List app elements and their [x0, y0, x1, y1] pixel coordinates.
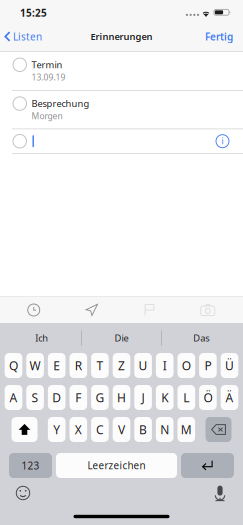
button[interactable]: Foto: [179, 297, 237, 323]
staticText: A: [9, 389, 17, 406]
button[interactable]: Ä: [221, 385, 238, 410]
button[interactable]: X: [69, 417, 87, 442]
staticText: Y: [53, 421, 60, 438]
button[interactable]: J: [134, 385, 152, 410]
staticText: 123: [21, 459, 39, 472]
button[interactable]: Ich: [2, 323, 81, 353]
button[interactable]: G: [91, 385, 109, 410]
staticText: Morgen: [31, 110, 62, 122]
button[interactable]: N: [156, 417, 173, 442]
staticText: Ö: [203, 389, 212, 406]
staticText: N: [160, 421, 169, 438]
staticText: X: [75, 421, 82, 438]
button[interactable]: Leerzeichen: [56, 453, 177, 478]
button[interactable]: I: [156, 353, 173, 378]
staticText: D: [52, 389, 61, 406]
staticText: Ä: [225, 389, 233, 406]
staticText: V: [118, 421, 125, 438]
staticText: Fertig: [205, 30, 233, 43]
staticText: Die: [114, 332, 128, 344]
button[interactable]: Diktieren: [200, 478, 240, 508]
staticText: Besprechung: [31, 97, 89, 110]
staticText: M: [181, 421, 192, 438]
staticText: S: [32, 389, 39, 406]
staticText: i: [221, 135, 223, 147]
button[interactable]: Löschen: [205, 417, 231, 442]
staticText: C: [96, 421, 104, 438]
button[interactable]: S: [26, 385, 44, 410]
staticText: I: [163, 357, 167, 374]
staticText: F: [75, 389, 81, 406]
button[interactable]: A: [5, 385, 22, 410]
staticText: Termin: [31, 58, 62, 71]
staticText: R: [75, 357, 82, 374]
button[interactable]: P: [199, 353, 217, 378]
button[interactable]: K: [156, 385, 173, 410]
button[interactable]: Fertig: [205, 25, 243, 48]
staticText: Ü: [225, 357, 234, 374]
button[interactable]: M: [177, 417, 195, 442]
button[interactable]: Termin: [0, 52, 243, 90]
staticText: U: [139, 357, 148, 374]
button[interactable]: C: [91, 417, 109, 442]
staticText: Leerzeichen: [87, 459, 145, 472]
staticText: Q: [9, 357, 18, 374]
button[interactable]: O: [177, 353, 195, 378]
button[interactable]: H: [113, 385, 130, 410]
button[interactable]: Z: [113, 353, 130, 378]
button[interactable]: Emoji: [3, 478, 43, 508]
button[interactable]: Ö: [199, 385, 217, 410]
staticText: Listen: [13, 30, 42, 43]
button[interactable]: E: [48, 353, 65, 378]
button[interactable]: Die: [82, 323, 161, 353]
staticText: K: [161, 389, 168, 406]
staticText: Das: [193, 332, 209, 344]
button[interactable]: Details: [216, 132, 243, 151]
button[interactable]: Besprechung: [0, 91, 243, 129]
button[interactable]: Datum: [5, 297, 63, 323]
staticText: T: [96, 357, 103, 374]
button[interactable]: V: [113, 417, 130, 442]
button[interactable]: Eingabe: [181, 453, 234, 478]
button[interactable]: Das: [162, 323, 241, 353]
button[interactable]: Ü: [221, 353, 238, 378]
button[interactable]: Y: [48, 417, 65, 442]
button[interactable]: Umschalten: [11, 417, 37, 442]
button[interactable]: Ort: [63, 297, 121, 323]
staticText: H: [117, 389, 126, 406]
button[interactable]: D: [48, 385, 65, 410]
staticText: Erinnerungen: [90, 30, 152, 43]
button[interactable]: 123: [9, 453, 52, 478]
button[interactable]: U: [134, 353, 152, 378]
button[interactable]: R: [69, 353, 87, 378]
button[interactable]: L: [177, 385, 195, 410]
staticText: O: [182, 357, 191, 374]
staticText: L: [183, 389, 189, 406]
button[interactable]: B: [134, 417, 152, 442]
staticText: Z: [118, 357, 125, 374]
button[interactable]: Q: [5, 353, 22, 378]
staticText: B: [139, 421, 147, 438]
button[interactable]: W: [26, 353, 44, 378]
button[interactable]: T: [91, 353, 109, 378]
staticText: E: [53, 357, 60, 374]
staticText: G: [95, 389, 104, 406]
staticText: W: [30, 357, 41, 374]
button[interactable]: Listen: [0, 25, 42, 48]
button[interactable]: F: [69, 385, 87, 410]
staticText: Ich: [35, 332, 48, 344]
staticText: 15:25: [20, 6, 47, 20]
staticText: 13.09.19: [31, 71, 65, 83]
staticText: P: [204, 357, 211, 374]
staticText: J: [142, 389, 145, 406]
